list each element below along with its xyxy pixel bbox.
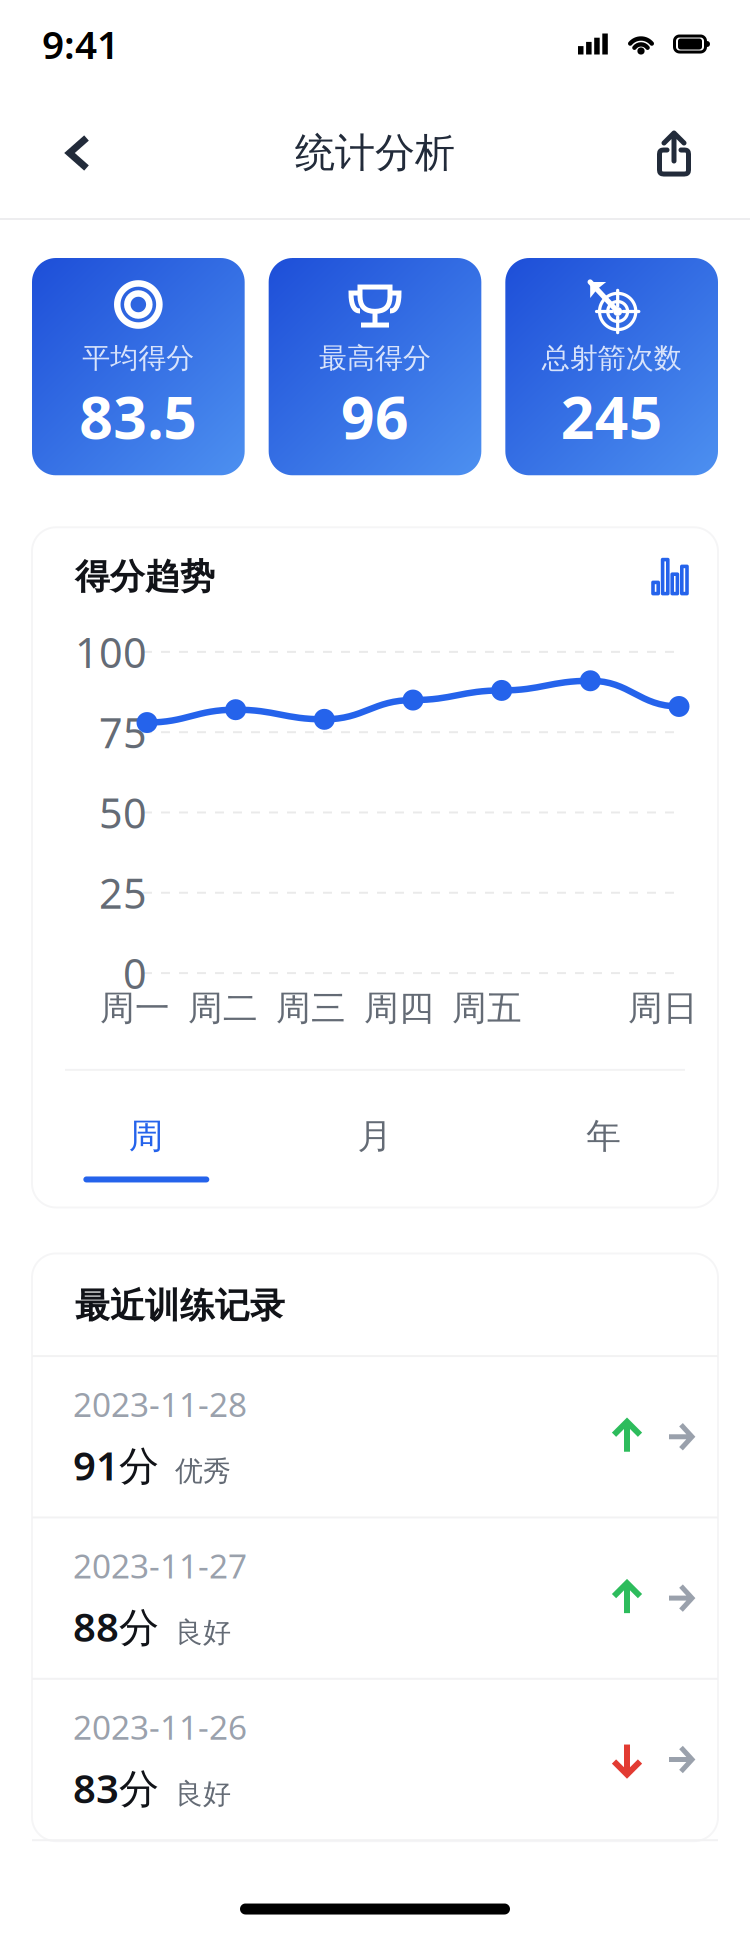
staticText: 91分 [73,1438,159,1491]
button[interactable]: 分享 [646,125,702,181]
button[interactable]: 周 [32,1115,261,1182]
staticText: 50 [99,785,147,840]
button[interactable]: 最高得分 [269,258,481,475]
staticText: 周三 [276,987,346,1029]
staticText: 100 [75,624,147,679]
staticText: 75 [99,705,147,760]
staticText: 周一 [100,987,170,1029]
staticText: 2023-11-28 [73,1382,247,1426]
staticText: 良好 [175,1615,231,1650]
button[interactable]: 2023-11-27 [32,1518,718,1678]
staticText: 平均得分 [82,341,194,375]
button[interactable]: 平均得分 [32,258,245,475]
button[interactable]: 总射箭次数 [505,258,718,475]
staticText: 96 [341,377,409,455]
staticText: 周 [129,1115,164,1157]
staticText: 83.5 [79,377,197,455]
button[interactable]: 年 [489,1115,718,1182]
staticText: 月 [357,1115,392,1157]
button[interactable]: 2023-11-28 [32,1357,718,1516]
staticText: 25 [99,865,147,920]
staticText: 统计分析 [295,128,455,177]
staticText: 年 [586,1115,621,1157]
staticText: 周日 [628,987,698,1029]
staticText: 2023-11-26 [73,1705,247,1749]
staticText: 9:41 [42,18,119,70]
staticText: 245 [561,377,663,455]
staticText: 良好 [175,1777,231,1811]
staticText: 0 [123,946,147,1000]
button[interactable]: 返回 [47,122,109,184]
staticText: 得分趋势 [75,555,215,598]
staticText: 周五 [452,987,522,1029]
staticText: 周二 [188,987,258,1029]
staticText: 2023-11-27 [73,1543,247,1588]
staticText: 88分 [73,1600,159,1653]
button[interactable]: 2023-11-26 [32,1680,718,1839]
staticText: 83分 [73,1761,159,1814]
staticText: 最近训练记录 [75,1284,285,1327]
staticText: 优秀 [175,1454,231,1488]
staticText: 周四 [364,987,434,1029]
staticText: 总射箭次数 [542,341,682,375]
staticText: 最高得分 [319,341,431,375]
button[interactable]: 月 [261,1115,489,1182]
